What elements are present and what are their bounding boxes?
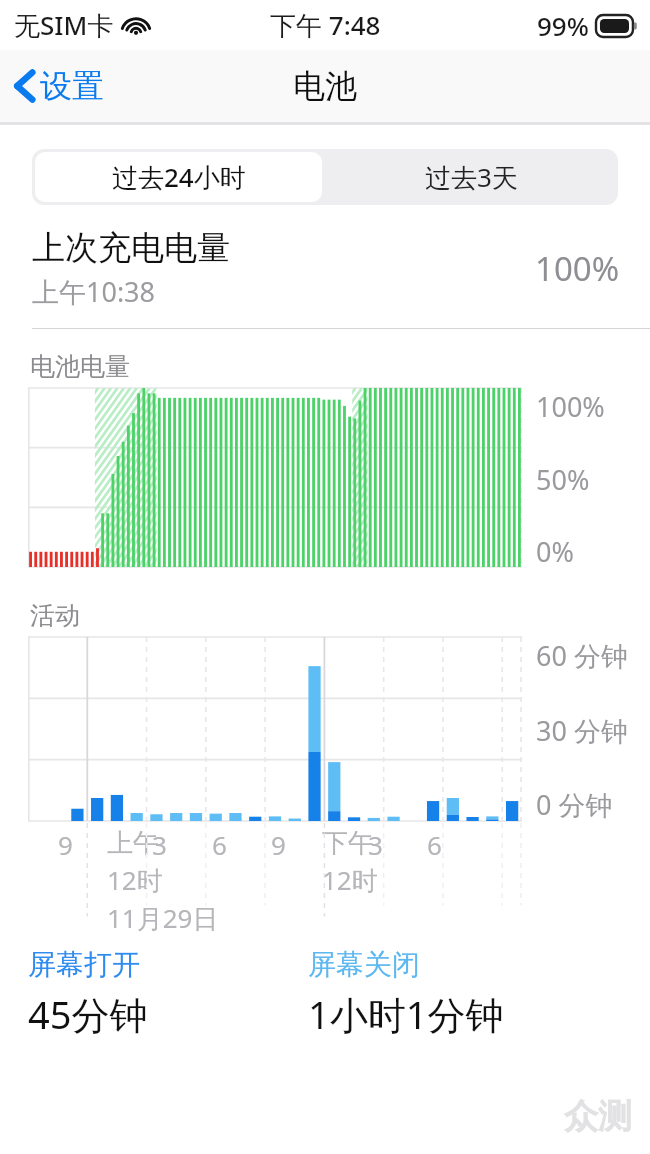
staticText: 活动 — [30, 600, 80, 631]
staticText: 上午10:38 — [32, 273, 156, 310]
staticText: 60 分钟 — [536, 637, 628, 674]
staticText: 3 — [368, 827, 383, 862]
staticText: 上次充电电量 — [32, 227, 230, 269]
staticText: 屏幕打开 — [28, 947, 140, 982]
staticText: 50% — [536, 461, 590, 498]
staticText: 电池电量 — [30, 351, 130, 382]
staticText: 12时 — [107, 862, 163, 898]
button[interactable]: 过去3天 — [325, 149, 618, 205]
staticText: 1小时1分钟 — [308, 988, 504, 1040]
button[interactable]: 过去24小时 — [35, 152, 322, 202]
staticText: 11月29日 — [107, 900, 219, 936]
staticText: 下午 7:48 — [270, 7, 381, 43]
staticText: 屏幕关闭 — [308, 947, 420, 982]
button[interactable]: 屏幕打开 — [28, 947, 308, 1040]
staticText: 过去3天 — [425, 159, 518, 195]
staticText: 无SIM卡 — [14, 7, 114, 43]
staticText: 99% — [537, 8, 589, 43]
staticText: 3 — [152, 827, 167, 862]
staticText: 9 — [58, 827, 73, 862]
staticText: 12时 — [322, 862, 378, 898]
staticText: 100% — [536, 388, 605, 425]
other: 返回 — [14, 69, 34, 103]
staticText: 上午 — [107, 827, 159, 860]
staticText: 45分钟 — [28, 988, 148, 1040]
staticText: 电池 — [293, 66, 357, 106]
staticText: 0 分钟 — [536, 786, 613, 823]
staticText: 30 分钟 — [536, 712, 628, 749]
button[interactable]: 屏幕关闭 — [308, 947, 628, 1040]
staticText: 9 — [271, 827, 286, 862]
button[interactable]: 返回 — [0, 60, 116, 112]
staticText: 过去24小时 — [112, 159, 246, 195]
button[interactable]: 上次充电电量 — [0, 227, 650, 310]
staticText: 设置 — [40, 66, 104, 106]
staticText: 下午 — [322, 827, 374, 860]
staticText: 6 — [212, 827, 227, 862]
staticText: 0% — [536, 533, 574, 570]
staticText: 100% — [535, 246, 620, 291]
staticText: 众测 — [564, 1095, 632, 1138]
staticText: 6 — [427, 827, 442, 862]
